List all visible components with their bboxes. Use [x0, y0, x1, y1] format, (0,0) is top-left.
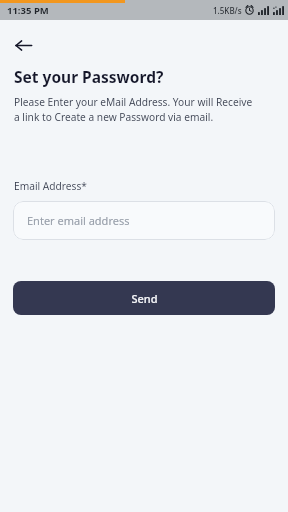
- staticText: Please Enter your eMail Address. Your wi…: [14, 95, 253, 124]
- staticText: 1.5KB/s: [213, 5, 242, 16]
- staticText: Send: [131, 291, 158, 306]
- button[interactable]: Send: [13, 281, 275, 315]
- staticText: Enter email address: [27, 213, 130, 228]
- button[interactable]: Back: [6, 28, 40, 62]
- button[interactable]: Enter email address: [13, 201, 275, 240]
- staticText: Email Address*: [14, 179, 87, 193]
- staticText: Set your Password?: [14, 66, 164, 87]
- staticText: 11:35 PM: [7, 4, 49, 17]
